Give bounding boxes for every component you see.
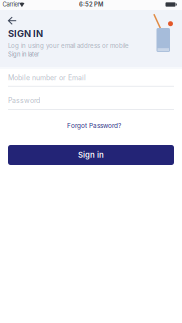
staticText: SIGN IN [8,28,43,39]
staticText: Password [8,96,40,105]
button[interactable]: Back [4,14,20,28]
staticText: Carrier [2,1,19,8]
staticText: Log in using your email address or mobil… [8,42,129,49]
button[interactable]: Forgot Password? [67,122,121,129]
staticText: Sign in later [8,51,39,58]
button[interactable]: Sign in [8,145,174,165]
staticText: Forgot Password? [67,122,121,129]
staticText: Mobile number or Email [8,73,86,82]
staticText: Sign in [78,150,104,160]
staticText: 6:52 PM [79,1,103,8]
button[interactable]: Sign in later [8,51,39,58]
